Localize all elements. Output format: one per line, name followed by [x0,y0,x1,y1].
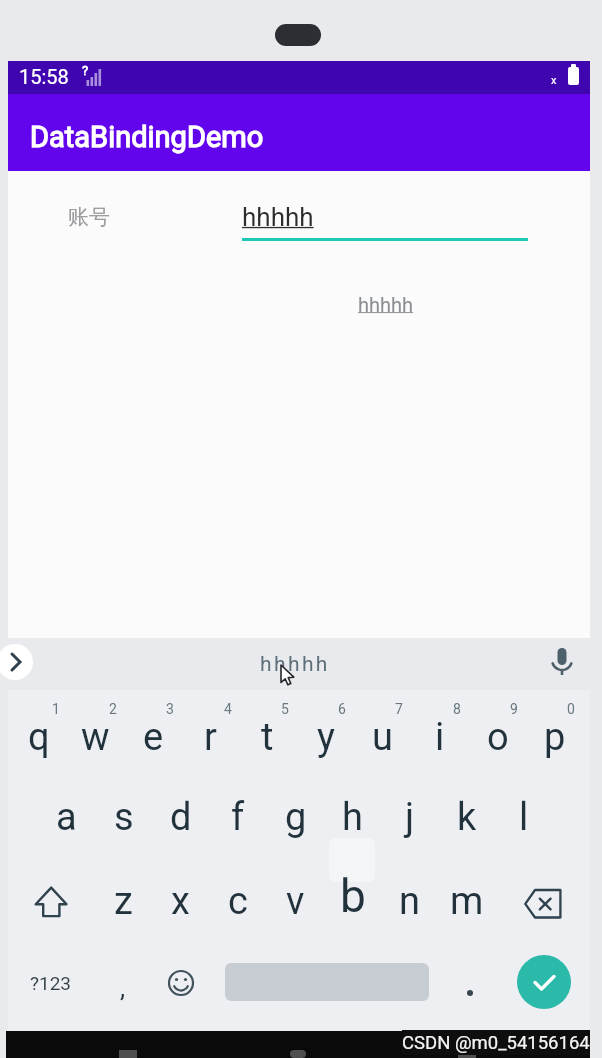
button[interactable]: e [125,706,182,768]
staticText: y [317,715,335,760]
staticText: hhhhh [358,293,414,316]
staticText: d [170,795,192,840]
staticText: e [143,715,164,760]
button[interactable]: y [297,706,354,768]
button[interactable]: i [411,706,468,768]
button[interactable]: hhhhh [330,286,442,322]
button[interactable]: k [438,786,495,848]
staticText: l [519,795,529,840]
staticText: i [435,715,445,760]
button[interactable]: f [209,786,266,848]
staticText: k [457,795,477,840]
staticText: ? [82,63,89,78]
button[interactable] [152,954,210,1012]
staticText: m [450,879,484,924]
staticText: hhhhh [260,652,330,677]
button[interactable]: r [182,706,239,768]
button[interactable]: u [354,706,411,768]
staticText: u [372,715,393,760]
staticText: n [399,879,420,924]
staticText: g [285,795,307,840]
button[interactable]: j [381,786,438,848]
button[interactable] [516,872,574,930]
button[interactable]: w [67,706,124,768]
staticText: h [342,795,363,840]
button[interactable]: t [239,706,296,768]
staticText: x [171,879,190,924]
staticText: c [228,879,248,924]
button[interactable]: g [267,786,324,848]
staticText: 9 [510,701,518,717]
staticText: 0 [567,701,575,717]
button[interactable]: hhhhh [242,196,528,238]
button[interactable]: m [438,870,495,932]
staticText: 4 [224,701,232,717]
button[interactable]: ?123 [16,954,86,1012]
staticText: f [231,795,245,840]
button[interactable]: , [94,957,151,1019]
staticText: r [204,715,217,760]
staticText: 2 [109,701,117,717]
button[interactable]: s [95,786,152,848]
staticText: 1 [52,701,60,717]
button[interactable]: q [10,706,67,768]
button[interactable]: b [324,865,381,927]
button[interactable]: hhhhh [240,640,350,688]
staticText: CSDN @m0_54156164 [402,1032,590,1054]
staticText: 账号 [68,204,110,230]
button[interactable]: v [267,870,324,932]
button[interactable]: n [381,870,438,932]
button[interactable] [544,644,580,680]
button[interactable]: d [152,786,209,848]
staticText: o [487,715,509,760]
button[interactable]: h [324,786,381,848]
button[interactable]: p [526,706,583,768]
button[interactable] [22,872,80,930]
staticText: DataBindingDemo [30,120,264,154]
button[interactable]: a [38,786,95,848]
button[interactable]: c [209,870,266,932]
button[interactable] [441,954,499,1012]
button[interactable] [0,644,33,680]
staticText: 8 [453,701,461,717]
staticText: 5 [281,701,289,717]
staticText: a [56,795,77,840]
button[interactable]: z [95,870,152,932]
staticText: 7 [395,701,403,717]
button[interactable]: x [152,870,209,932]
staticText: p [544,715,566,760]
staticText: ?123 [30,972,72,994]
button[interactable]: l [495,786,552,848]
staticText: z [114,879,133,924]
staticText: s [114,795,134,840]
staticText: b [340,869,366,923]
staticText: t [261,715,274,760]
staticText: w [81,715,110,760]
staticText: hhhhh [242,202,314,232]
staticText: j [405,795,415,840]
staticText: v [286,879,305,924]
staticText: 6 [338,701,346,717]
button[interactable] [517,955,571,1009]
staticText: , [120,973,126,1003]
staticText: 15:58 [19,65,69,88]
staticText: x [551,74,557,87]
staticText: 3 [166,701,174,717]
staticText: q [28,715,50,760]
button[interactable]: o [469,706,526,768]
